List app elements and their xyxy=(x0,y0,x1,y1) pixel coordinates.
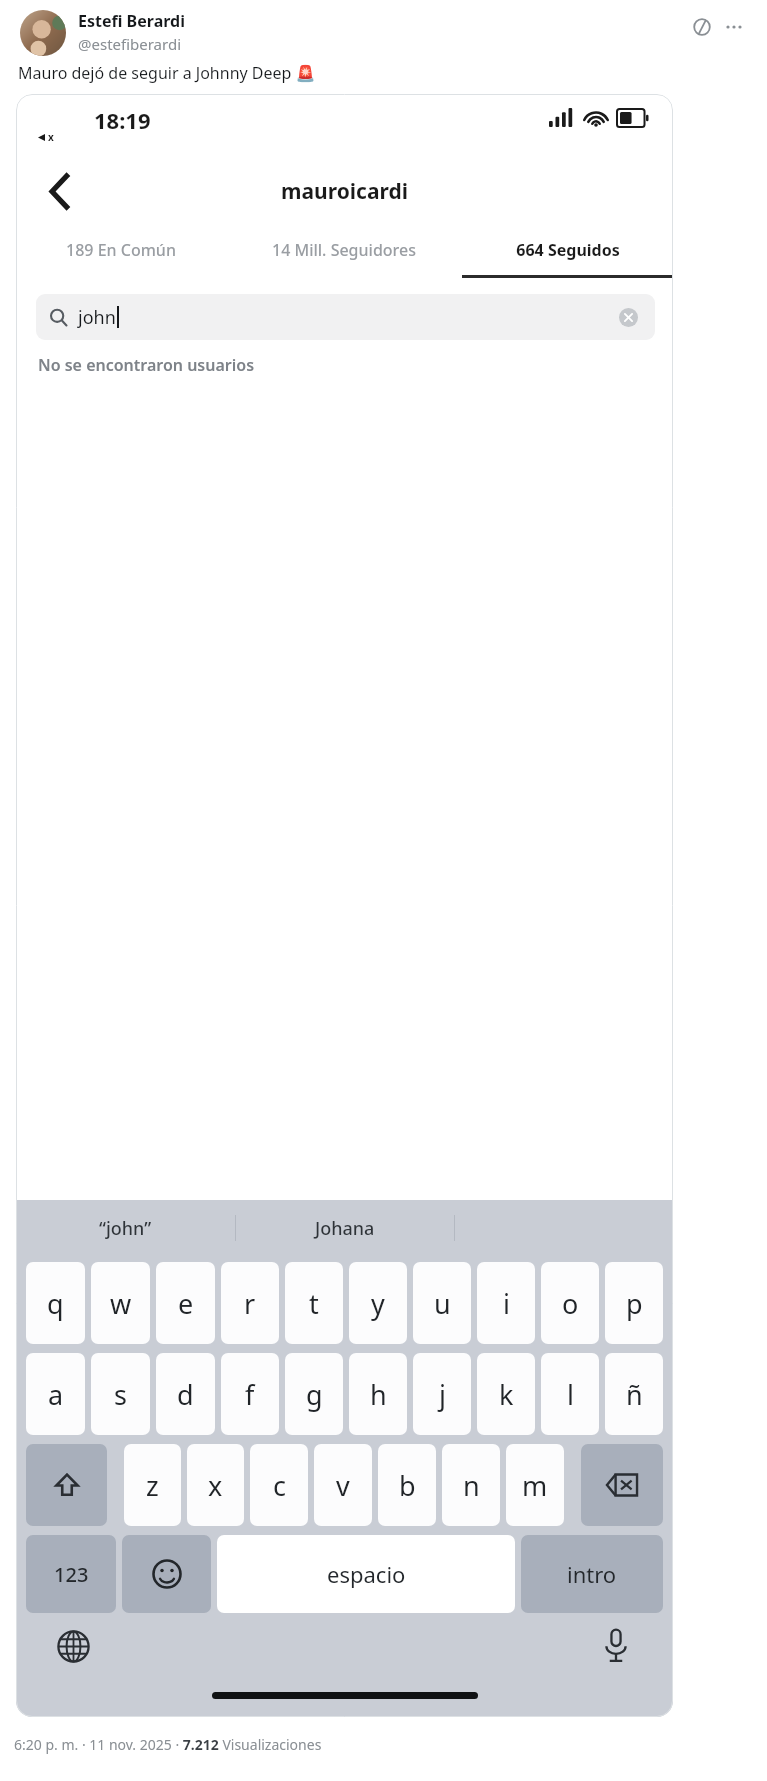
staticText: c xyxy=(273,1467,286,1504)
staticText: z xyxy=(146,1467,159,1504)
button[interactable]: 14 Mill. Seguidores xyxy=(226,222,462,278)
staticText: m xyxy=(522,1467,548,1504)
button[interactable]: Johana xyxy=(236,1200,454,1256)
staticText: 123 xyxy=(54,1561,89,1588)
button[interactable]: Back xyxy=(38,170,80,212)
staticText: t xyxy=(309,1285,319,1322)
button[interactable]: o xyxy=(541,1262,599,1344)
button[interactable]: l xyxy=(541,1353,599,1435)
staticText: x xyxy=(48,130,54,144)
staticText: p xyxy=(626,1285,643,1322)
staticText: 6:20 p. m. · 11 nov. 2025 · 7.212 Visual… xyxy=(14,1735,322,1754)
button[interactable]: m xyxy=(506,1444,564,1526)
staticText: s xyxy=(114,1376,127,1413)
staticText: b xyxy=(399,1467,416,1504)
staticText: h xyxy=(370,1376,387,1413)
staticText: j xyxy=(439,1376,446,1413)
button[interactable]: e xyxy=(156,1262,215,1344)
button[interactable]: 189 En Común xyxy=(16,222,226,278)
button[interactable]: x xyxy=(187,1444,244,1526)
staticText: v xyxy=(336,1467,350,1504)
staticText: i xyxy=(503,1285,510,1322)
staticText: ñ xyxy=(626,1376,643,1413)
staticText: q xyxy=(47,1285,64,1322)
staticText: mauroicardi xyxy=(281,177,409,206)
staticText: No se encontraron usuarios xyxy=(38,354,255,376)
button[interactable]: Shift xyxy=(26,1444,107,1526)
button[interactable]: john xyxy=(36,294,655,340)
staticText: d xyxy=(177,1376,194,1413)
button[interactable]: Change language xyxy=(50,1623,96,1669)
button[interactable]: y xyxy=(349,1262,407,1344)
staticText: 14 Mill. Seguidores xyxy=(272,239,416,261)
button[interactable]: v xyxy=(314,1444,372,1526)
staticText: intro xyxy=(567,1559,617,1589)
staticText: “john” xyxy=(99,1216,152,1241)
button[interactable]: w xyxy=(91,1262,150,1344)
staticText: a xyxy=(48,1376,64,1413)
button[interactable]: j xyxy=(413,1353,471,1435)
button[interactable]: Grok actions xyxy=(689,14,715,40)
staticText: Johana xyxy=(315,1216,375,1241)
button[interactable]: d xyxy=(156,1353,215,1435)
button[interactable]: b xyxy=(378,1444,436,1526)
button[interactable]: k xyxy=(477,1353,535,1435)
staticText: @estefiberardi xyxy=(78,34,182,54)
button[interactable]: Profile photo xyxy=(20,10,66,56)
staticText: g xyxy=(306,1376,323,1413)
button[interactable]: intro xyxy=(521,1535,663,1613)
button[interactable]: g xyxy=(285,1353,343,1435)
button[interactable]: h xyxy=(349,1353,407,1435)
button[interactable]: q xyxy=(26,1262,85,1344)
staticText: 189 En Común xyxy=(66,239,176,261)
staticText: Estefi Berardi xyxy=(78,10,185,32)
staticText: e xyxy=(178,1285,194,1322)
button[interactable]: ñ xyxy=(605,1353,663,1435)
button[interactable]: 123 xyxy=(26,1535,116,1613)
staticText: Mauro dejó de seguir a Johnny Deep 🚨 xyxy=(18,62,316,84)
button[interactable]: “john” xyxy=(16,1200,235,1256)
button[interactable]: i xyxy=(477,1262,535,1344)
button[interactable]: r xyxy=(221,1262,279,1344)
button[interactable]: Backspace xyxy=(581,1444,663,1526)
button[interactable]: f xyxy=(221,1353,279,1435)
button[interactable]: c xyxy=(250,1444,308,1526)
button[interactable]: s xyxy=(91,1353,150,1435)
button[interactable]: Clear search xyxy=(615,304,641,330)
staticText: k xyxy=(499,1376,514,1413)
button[interactable]: t xyxy=(285,1262,343,1344)
staticText: espacio xyxy=(327,1559,406,1589)
staticText: y xyxy=(371,1285,385,1322)
button[interactable]: u xyxy=(413,1262,471,1344)
button[interactable]: 664 Seguidos xyxy=(462,222,673,278)
staticText: l xyxy=(567,1376,574,1413)
button[interactable]: z xyxy=(124,1444,181,1526)
button[interactable]: a xyxy=(26,1353,85,1435)
staticText: 18:19 xyxy=(94,105,151,135)
staticText: n xyxy=(463,1467,480,1504)
button[interactable]: More options xyxy=(721,14,747,40)
staticText: f xyxy=(245,1376,255,1413)
staticText: x xyxy=(208,1467,223,1504)
staticText: u xyxy=(434,1285,451,1322)
staticText: 664 Seguidos xyxy=(516,239,620,261)
staticText: w xyxy=(110,1285,132,1322)
staticText: o xyxy=(562,1285,579,1322)
button[interactable]: n xyxy=(442,1444,500,1526)
button[interactable]: p xyxy=(605,1262,663,1344)
button[interactable]: espacio xyxy=(217,1535,515,1613)
staticText: r xyxy=(244,1285,256,1322)
staticText: john xyxy=(78,305,116,330)
button[interactable]: Voice input xyxy=(593,1623,639,1669)
button[interactable]: Emoji xyxy=(122,1535,211,1613)
